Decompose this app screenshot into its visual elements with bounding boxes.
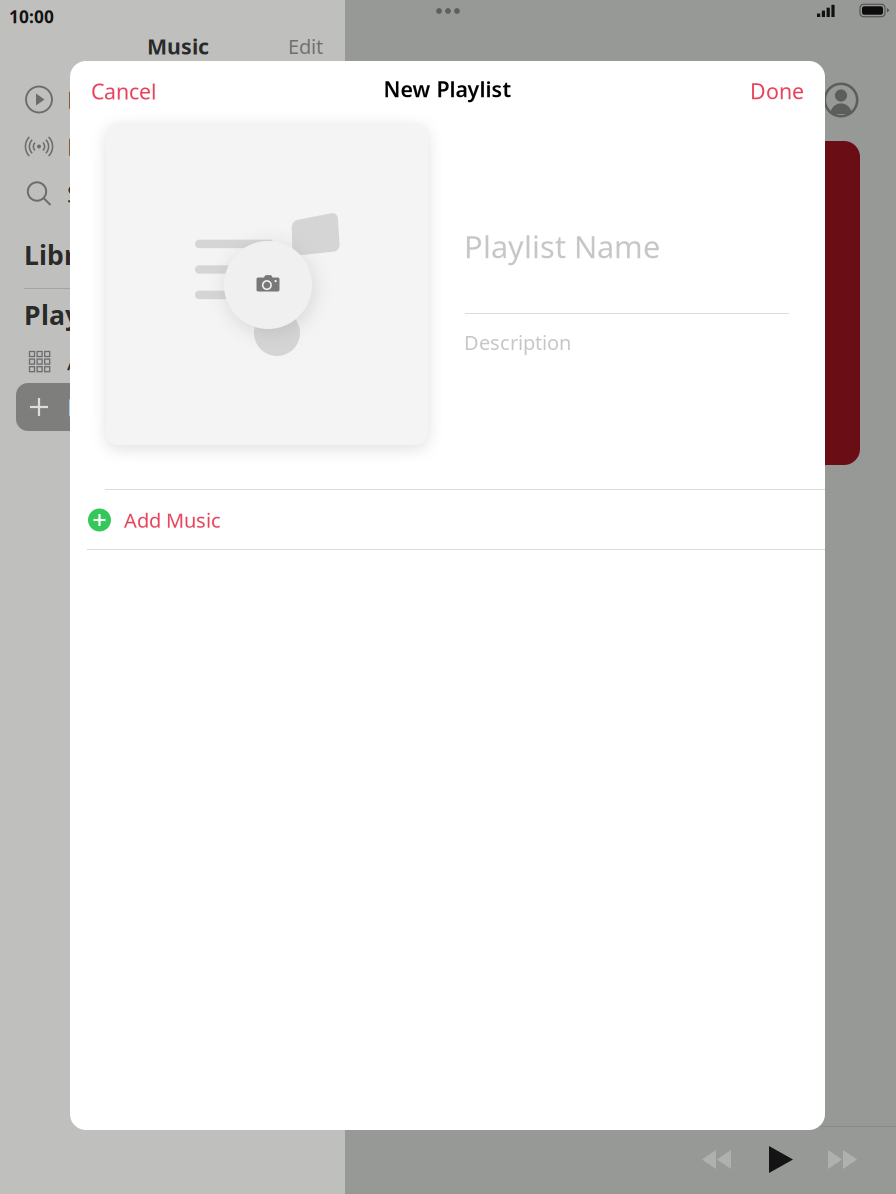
button[interactable]: Done: [729, 65, 825, 117]
staticText: Cancel: [91, 77, 157, 105]
staticText: Library: [24, 237, 118, 272]
staticText: Done: [750, 77, 804, 105]
staticText: Add Music: [124, 507, 221, 533]
staticText: Listen Now: [67, 84, 192, 115]
button[interactable]: Play: [755, 1132, 807, 1187]
staticText: Radio: [67, 131, 131, 162]
button[interactable]: Account: [822, 81, 860, 119]
button[interactable]: Edit: [282, 27, 329, 66]
button[interactable]: Cancel: [70, 65, 178, 117]
staticText: Music: [147, 32, 209, 60]
button[interactable]: Rewind: [688, 1136, 745, 1183]
button[interactable]: Add Music: [70, 490, 825, 550]
staticText: Edit: [288, 33, 323, 60]
staticText: Playlist Name: [464, 226, 660, 267]
staticText: All Playlists: [67, 345, 189, 377]
button[interactable]: Listen Now: [0, 76, 345, 123]
button[interactable]: Choose playlist artwork: [106, 123, 428, 445]
button[interactable]: New Playlist: [16, 383, 330, 431]
staticText: 10:00: [9, 5, 54, 28]
staticText: Search: [67, 178, 143, 209]
staticText: Description: [464, 329, 571, 356]
button[interactable]: Radio: [0, 123, 345, 170]
button[interactable]: Fast forward: [814, 1136, 871, 1183]
staticText: Playlists: [24, 297, 134, 332]
button[interactable]: Search: [0, 170, 345, 217]
button[interactable]: All Playlists: [0, 339, 330, 383]
staticText: New Playlist: [67, 391, 201, 423]
staticText: New Playlist: [383, 75, 511, 103]
